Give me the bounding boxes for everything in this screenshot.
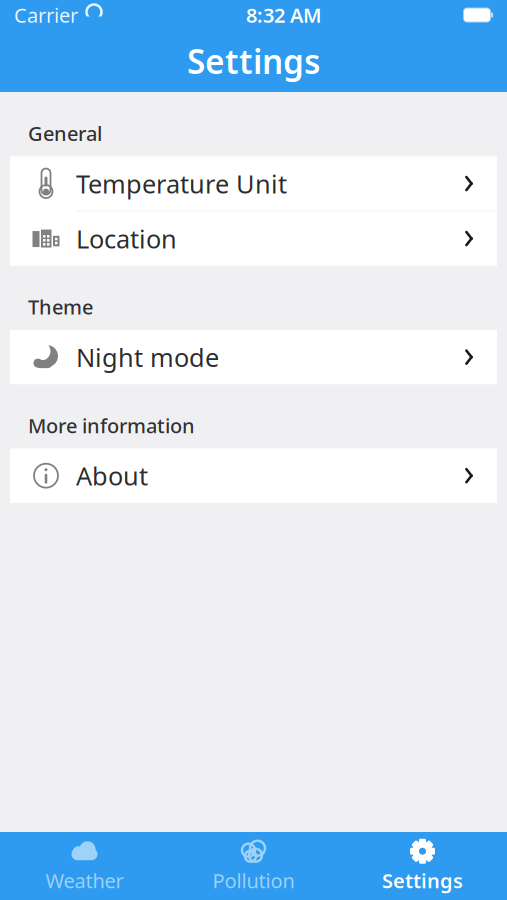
- staticText: Settings: [382, 867, 463, 894]
- staticText: Theme: [28, 294, 93, 320]
- button[interactable]: Night mode: [10, 330, 497, 384]
- button[interactable]: Temperature Unit: [10, 157, 497, 211]
- button[interactable]: Pollution: [169, 832, 338, 900]
- staticText: Night mode: [76, 340, 219, 374]
- button[interactable]: Weather: [0, 832, 169, 900]
- button[interactable]: Settings: [338, 832, 507, 900]
- button[interactable]: Location: [10, 212, 497, 266]
- staticText: Pollution: [212, 867, 294, 894]
- staticText: More information: [28, 412, 195, 439]
- button[interactable]: About: [10, 449, 497, 503]
- staticText: Location: [76, 222, 177, 255]
- staticText: 8:32 AM: [246, 2, 322, 28]
- staticText: About: [76, 459, 148, 492]
- staticText: Settings: [187, 39, 320, 83]
- staticText: General: [28, 120, 102, 147]
- staticText: Temperature Unit: [76, 167, 287, 200]
- staticText: Carrier: [14, 2, 78, 28]
- staticText: Weather: [45, 867, 123, 894]
